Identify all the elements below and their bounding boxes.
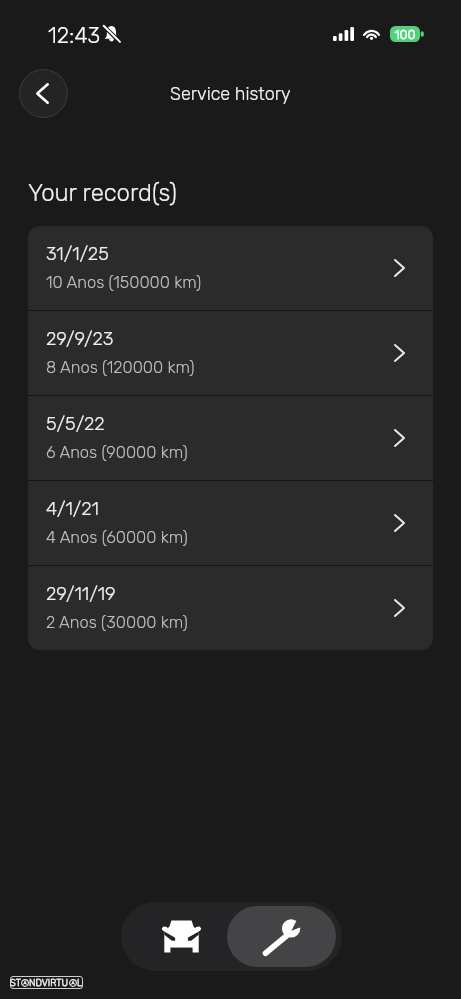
staticText: 8 Anos (120000 km) [46,358,195,378]
staticText: 4/1/21 [46,498,99,520]
button[interactable]: 4/1/21 [28,481,433,565]
staticText: 29/9/23 [46,328,114,350]
button[interactable]: 29/11/19 [28,566,433,650]
staticText: NDVIRTU [29,977,69,988]
staticText: L [77,977,83,988]
button[interactable]: My car [121,902,227,971]
staticText: 12:43 [48,22,101,48]
staticText: 100 [390,27,420,42]
button[interactable]: Back [19,69,68,118]
staticText: 29/11/19 [46,583,116,605]
button[interactable]: Service [227,906,336,967]
staticText: Service history [170,83,291,104]
staticText: ST [10,977,21,988]
staticText: 5/5/22 [46,413,105,435]
staticText: 4 Anos (60000 km) [46,528,188,548]
staticText: Your record(s) [28,179,178,207]
button[interactable]: 31/1/25 [28,226,433,310]
staticText: 6 Anos (90000 km) [46,443,188,463]
button[interactable]: 29/9/23 [28,311,433,395]
staticText: 31/1/25 [46,243,109,265]
button[interactable]: 5/5/22 [28,396,433,480]
staticText: 2 Anos (30000 km) [46,613,188,633]
staticText: 10 Anos (150000 km) [46,273,202,293]
